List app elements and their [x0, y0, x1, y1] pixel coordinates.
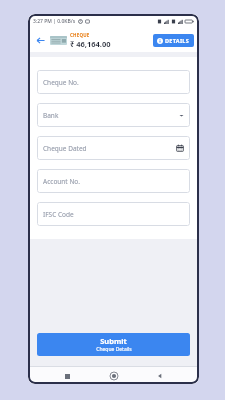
staticText: DETAILS — [165, 37, 190, 44]
button[interactable]: Recents — [59, 368, 75, 384]
staticText: Submit — [100, 336, 127, 346]
button[interactable]: Back — [152, 368, 168, 384]
button[interactable]: Account No. — [37, 169, 190, 193]
button[interactable]: IFSC Code — [37, 202, 190, 226]
button[interactable]: Home — [106, 368, 122, 384]
staticText: Account No. — [43, 177, 184, 186]
button[interactable]: DETAILS — [153, 34, 194, 47]
button[interactable] — [50, 36, 67, 45]
staticText: CHEQUE — [70, 32, 90, 38]
button[interactable]: Cheque Dated — [37, 136, 190, 160]
staticText: IFSC Code — [43, 210, 184, 219]
staticText: Cheque No. — [43, 78, 184, 87]
button[interactable]: Submit — [37, 333, 190, 356]
staticText: Bank — [43, 111, 179, 120]
button[interactable]: Back — [33, 33, 47, 47]
staticText: 3:27 PM | 0.0KB/s — [33, 18, 76, 25]
button[interactable]: Bank — [37, 103, 190, 127]
button[interactable]: Cheque No. — [37, 70, 190, 94]
staticText: ₹ 46,164.00 — [70, 39, 111, 49]
staticText: Cheque Dated — [43, 144, 176, 153]
staticText: Cheque Details — [96, 346, 132, 353]
